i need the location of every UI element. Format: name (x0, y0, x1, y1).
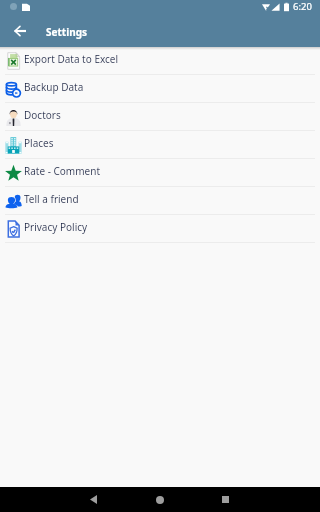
button[interactable]: Back (81, 487, 105, 512)
staticText: Rate - Comment (24, 164, 100, 178)
button[interactable]: Recent apps (213, 487, 237, 512)
button[interactable]: Rate - Comment (0, 159, 320, 186)
button[interactable]: Places (0, 131, 320, 158)
button[interactable]: Home (148, 487, 172, 512)
staticText: 6:20 (293, 0, 312, 13)
button[interactable]: Back (8, 17, 32, 44)
staticText: Export Data to Excel (24, 52, 119, 66)
button[interactable]: Doctors (0, 103, 320, 130)
staticText: Places (24, 136, 54, 150)
button[interactable]: Backup Data (0, 75, 320, 102)
staticText: Tell a friend (24, 192, 79, 206)
staticText: Settings (46, 25, 87, 39)
button[interactable]: Export Data to Excel (0, 47, 320, 74)
button[interactable]: Privacy Policy (0, 215, 320, 242)
staticText: Doctors (24, 108, 61, 122)
button[interactable]: Tell a friend (0, 187, 320, 214)
staticText: Backup Data (24, 80, 84, 94)
staticText: Privacy Policy (24, 220, 88, 234)
